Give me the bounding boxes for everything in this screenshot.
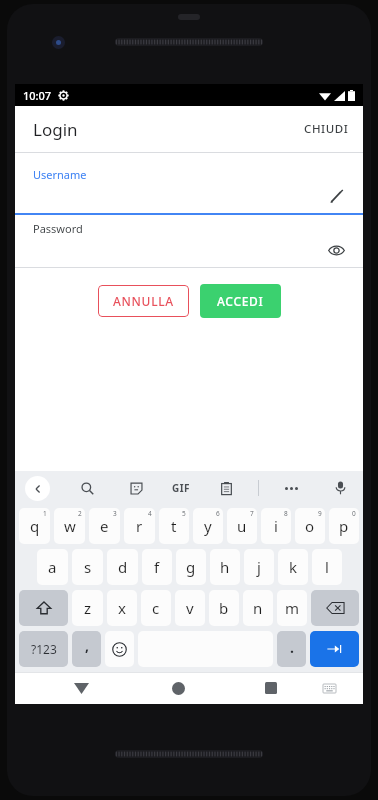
staticText: 10:07 (23, 88, 52, 103)
button[interactable]: Back (66, 673, 96, 703)
button[interactable]: Switch keyboard (316, 675, 342, 701)
staticText: CHIUDI (304, 121, 349, 137)
button[interactable]: c (141, 590, 171, 626)
staticText: c (152, 598, 160, 618)
button[interactable]: CHIUDI (290, 111, 363, 147)
button[interactable]: Stickers (123, 475, 149, 501)
staticText: n (253, 598, 263, 618)
staticText: h (220, 557, 230, 577)
button[interactable]: Emoji (105, 631, 134, 667)
staticText: k (289, 557, 298, 577)
button[interactable]: More options (278, 475, 304, 501)
button[interactable]: z (72, 590, 103, 626)
button[interactable]: Backspace (311, 590, 359, 626)
staticText: ANNULLA (113, 293, 174, 309)
staticText: u (237, 516, 247, 536)
staticText: Login (33, 118, 78, 141)
button[interactable]: Clipboard (213, 475, 239, 501)
button[interactable]: ?123 (19, 631, 68, 667)
button[interactable]: u (227, 508, 257, 544)
staticText: Username (33, 167, 87, 182)
button[interactable]: Username (15, 161, 363, 213)
button[interactable]: n (243, 590, 273, 626)
button[interactable]: GIF (172, 481, 190, 495)
button[interactable]: v (175, 590, 205, 626)
button[interactable]: w (54, 508, 85, 544)
staticText: 2 (78, 509, 82, 518)
button[interactable]: Home (163, 673, 193, 703)
staticText: v (186, 598, 194, 618)
button[interactable]: ACCEDI (200, 284, 281, 318)
button[interactable]: l (312, 549, 342, 585)
button[interactable]: Recent apps (256, 673, 286, 703)
button[interactable]: Show password (323, 237, 349, 263)
staticText: q (30, 516, 40, 536)
staticText: w (64, 516, 76, 536)
button[interactable]: Search (74, 475, 100, 501)
staticText: a (48, 557, 57, 577)
button[interactable]: Password (15, 215, 363, 267)
button[interactable]: Shift (19, 590, 68, 626)
button[interactable]: , (72, 631, 101, 667)
button[interactable]: p (329, 508, 359, 544)
staticText: g (186, 557, 196, 577)
button[interactable]: j (244, 549, 274, 585)
button[interactable]: x (107, 590, 137, 626)
staticText: e (100, 516, 109, 536)
staticText: ?123 (31, 641, 57, 657)
staticText: . (290, 638, 294, 657)
staticText: o (305, 516, 315, 536)
button[interactable]: q (19, 508, 50, 544)
button[interactable]: r (124, 508, 155, 544)
staticText: 1 (43, 509, 47, 518)
staticText: 4 (148, 509, 152, 518)
staticText: 3 (113, 509, 117, 518)
staticText: i (274, 516, 278, 536)
button[interactable]: o (295, 508, 325, 544)
button[interactable]: t (159, 508, 189, 544)
staticText: 7 (250, 509, 254, 518)
staticText: p (339, 516, 349, 536)
staticText: z (84, 598, 92, 618)
staticText: x (118, 598, 126, 618)
button[interactable]: . (277, 631, 306, 667)
button[interactable]: Edit (323, 183, 349, 209)
staticText: 9 (318, 509, 322, 518)
staticText: Password (33, 221, 83, 236)
button[interactable]: Enter (310, 631, 359, 667)
staticText: 0 (352, 509, 356, 518)
button[interactable]: g (176, 549, 206, 585)
staticText: y (204, 516, 212, 536)
staticText: l (325, 557, 329, 577)
staticText: f (154, 557, 160, 577)
button[interactable]: f (142, 549, 172, 585)
staticText: t (171, 516, 177, 536)
button[interactable]: y (193, 508, 223, 544)
button[interactable]: m (277, 590, 307, 626)
button[interactable]: Back (25, 476, 50, 501)
button[interactable]: e (89, 508, 120, 544)
button[interactable]: k (278, 549, 308, 585)
staticText: 5 (182, 509, 186, 518)
staticText: m (285, 598, 300, 618)
button[interactable]: h (210, 549, 240, 585)
staticText: 8 (284, 509, 288, 518)
staticText: d (118, 557, 128, 577)
staticText: , (85, 636, 89, 655)
staticText: 6 (216, 509, 220, 518)
staticText: j (257, 557, 261, 577)
button[interactable]: i (261, 508, 291, 544)
button[interactable]: a (37, 549, 68, 585)
button[interactable]: Voice input (327, 475, 353, 501)
button[interactable]: s (72, 549, 103, 585)
button[interactable]: b (209, 590, 239, 626)
staticText: b (219, 598, 229, 618)
button[interactable]: ANNULLA (98, 285, 189, 317)
staticText: r (136, 516, 143, 536)
staticText: ACCEDI (217, 293, 264, 309)
staticText: s (84, 557, 92, 577)
button[interactable]: d (107, 549, 138, 585)
